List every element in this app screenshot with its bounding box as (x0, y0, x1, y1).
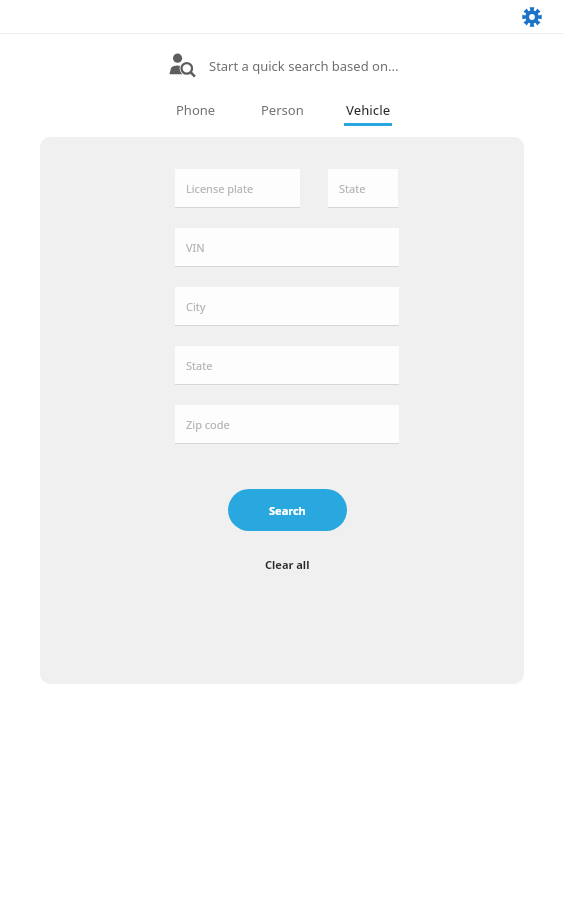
button[interactable]: Vehicle (336, 97, 400, 130)
button[interactable]: Settings (519, 4, 545, 30)
staticText: Person (261, 101, 304, 119)
button[interactable]: City (175, 287, 399, 326)
button[interactable]: Clear all (253, 552, 322, 577)
button[interactable]: State (175, 346, 399, 385)
button[interactable]: Search (228, 489, 347, 531)
staticText: Clear all (265, 557, 310, 572)
button[interactable]: Person (250, 97, 314, 130)
staticText: City (186, 299, 206, 314)
staticText: Vehicle (346, 101, 391, 119)
staticText: VIN (186, 240, 205, 255)
button[interactable]: License plate (175, 169, 300, 208)
staticText: Start a quick search based on... (209, 57, 399, 75)
button[interactable]: VIN (175, 228, 399, 267)
button[interactable]: Phone (164, 97, 228, 130)
staticText: License plate (186, 181, 254, 196)
staticText: Search (269, 503, 306, 518)
staticText: State (339, 181, 366, 196)
button[interactable]: Zip code (175, 405, 399, 444)
staticText: Phone (176, 101, 216, 119)
staticText: Zip code (186, 417, 230, 432)
staticText: State (186, 358, 213, 373)
button[interactable]: State (328, 169, 398, 208)
